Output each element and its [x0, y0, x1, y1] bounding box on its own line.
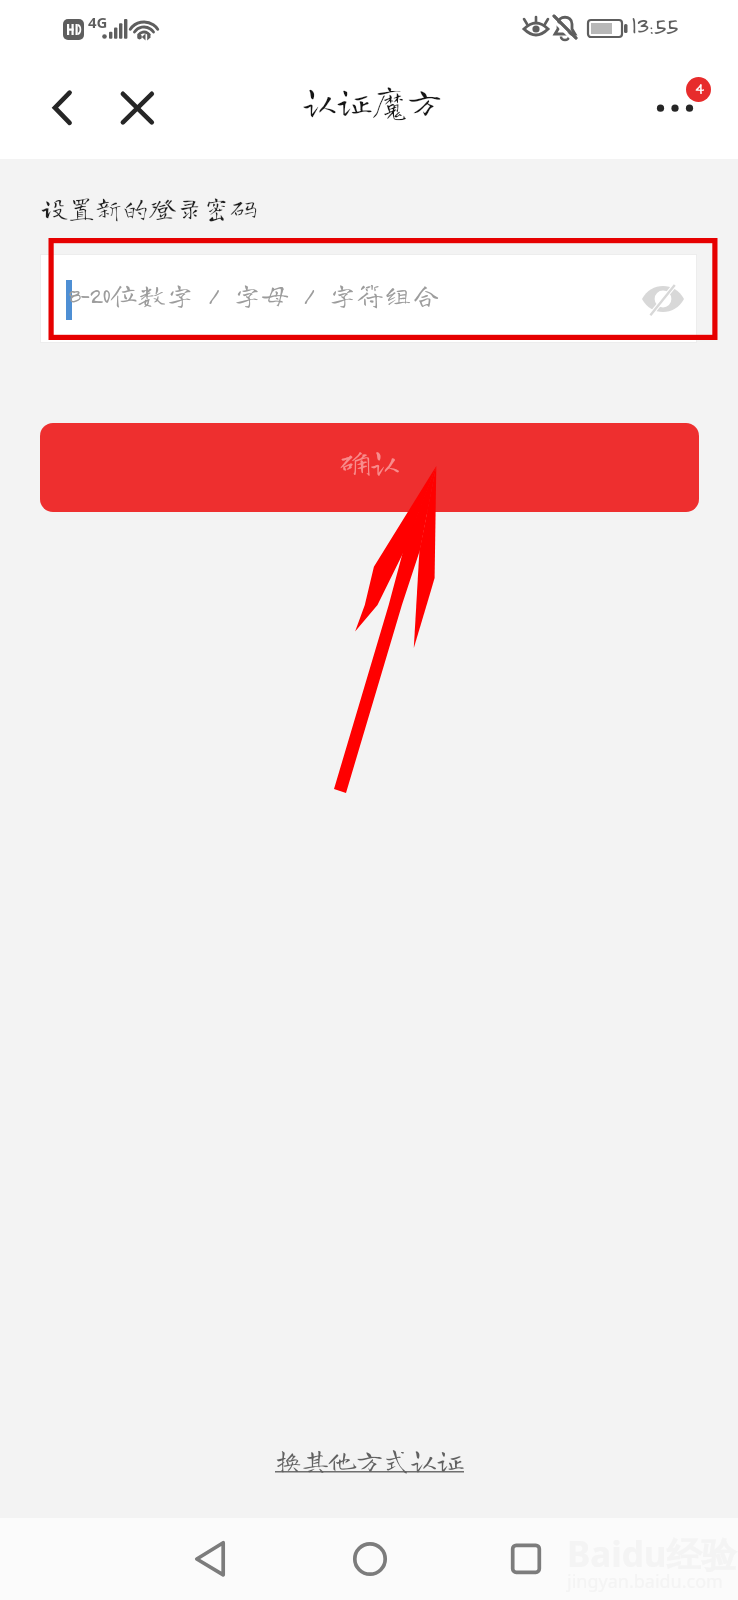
button[interactable]: Close: [110, 82, 166, 134]
staticText: 换其他方式认证: [275, 1446, 464, 1473]
staticText: 4: [695, 79, 703, 98]
staticText: 8-20位数字 / 字母 / 字符组合: [68, 280, 441, 308]
staticText: Baidu经验: [567, 1530, 737, 1578]
button[interactable]: More options: [646, 86, 708, 132]
staticText: 确认: [340, 447, 400, 477]
button[interactable]: Show password: [642, 285, 684, 313]
button[interactable]: Back: [180, 1529, 240, 1589]
staticText: 认证魔方: [302, 83, 443, 118]
button[interactable]: Home: [340, 1529, 400, 1589]
button[interactable]: 换其他方式认证: [275, 1446, 464, 1473]
staticText: 13:55: [631, 10, 678, 40]
staticText: 4G: [88, 12, 108, 32]
button[interactable]: Recents: [496, 1529, 556, 1589]
button[interactable]: Back: [32, 82, 88, 134]
button[interactable]: 8-20位数字 / 字母 / 字符组合: [41, 255, 696, 342]
staticText: 设置新的登录密码: [41, 194, 257, 221]
button[interactable]: 确认: [40, 423, 699, 512]
